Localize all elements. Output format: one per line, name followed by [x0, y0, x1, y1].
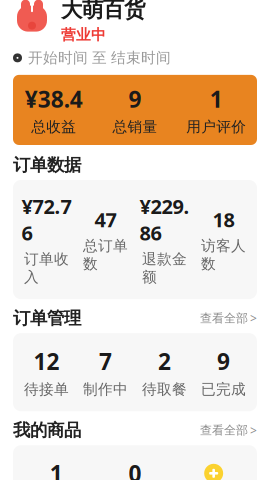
- staticText: 12: [33, 346, 59, 376]
- staticText: 已完成: [201, 380, 246, 398]
- staticText: 47: [94, 206, 116, 233]
- staticText: ¥229.86: [139, 193, 189, 246]
- staticText: 总收益: [31, 118, 76, 136]
- staticText: 待接单: [24, 380, 69, 398]
- staticText: 1: [50, 458, 63, 480]
- staticText: 订单收入: [24, 250, 69, 286]
- staticText: 7: [99, 346, 112, 376]
- staticText: 用户评价: [186, 118, 246, 136]
- staticText: >: [250, 310, 257, 326]
- staticText: >: [250, 422, 257, 438]
- button[interactable]: 查看全部: [192, 307, 257, 329]
- staticText: 查看全部: [200, 423, 248, 438]
- staticText: 大萌百货: [61, 0, 145, 23]
- button[interactable]: 查看全部: [192, 419, 257, 441]
- staticText: 9: [128, 84, 141, 114]
- staticText: 总订单数: [83, 237, 128, 273]
- staticText: 0: [128, 458, 141, 480]
- staticText: 待取餐: [142, 380, 187, 398]
- staticText: 开始时间 至 结束时间: [28, 49, 171, 67]
- staticText: 营业中: [61, 26, 106, 44]
- staticText: 订单管理: [13, 307, 81, 329]
- staticText: 退款金额: [142, 250, 187, 286]
- staticText: 2: [158, 346, 171, 376]
- staticText: 制作中: [83, 380, 128, 398]
- staticText: 总销量: [112, 118, 157, 136]
- staticText: ¥72.76: [21, 193, 71, 246]
- staticText: 18: [212, 206, 234, 233]
- staticText: 我的商品: [13, 420, 81, 441]
- staticText: 1: [210, 84, 223, 114]
- staticText: ¥38.4: [25, 84, 83, 114]
- button[interactable]: 添加商品: [174, 464, 253, 480]
- staticText: 查看全部: [200, 311, 248, 325]
- staticText: 9: [217, 346, 230, 376]
- staticText: 访客人数: [201, 237, 246, 273]
- staticText: 订单数据: [13, 154, 81, 176]
